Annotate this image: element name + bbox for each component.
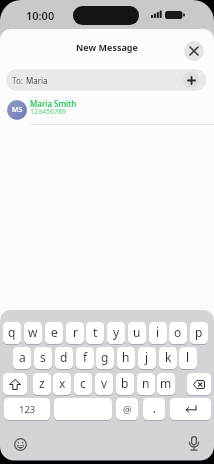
staticText: x (59, 375, 66, 391)
button[interactable]: n (137, 373, 155, 395)
button[interactable] (183, 72, 199, 88)
staticText: k (165, 349, 172, 365)
button[interactable]: v (95, 373, 113, 395)
button[interactable] (188, 436, 200, 452)
staticText: j (145, 349, 149, 365)
button[interactable] (187, 373, 211, 395)
staticText: . (153, 402, 156, 416)
staticText: q (8, 324, 16, 340)
staticText: v (101, 375, 108, 391)
button[interactable]: d (55, 347, 73, 369)
staticText: New Message (76, 41, 138, 53)
staticText: g (101, 349, 109, 365)
staticText: n (142, 375, 150, 391)
button[interactable]: i (149, 322, 167, 344)
staticText: i (156, 324, 160, 340)
button[interactable]: q (3, 322, 21, 344)
button[interactable]: m (157, 373, 175, 395)
staticText: s (40, 349, 46, 365)
staticText: w (28, 324, 38, 340)
button[interactable]: s (34, 347, 52, 369)
staticText: r (73, 324, 78, 340)
staticText: Maria (26, 75, 48, 86)
button[interactable]: a (13, 347, 31, 369)
button[interactable] (14, 438, 27, 451)
staticText: e (51, 324, 58, 340)
staticText: 10:00 (26, 8, 55, 22)
staticText: d (60, 349, 68, 365)
button[interactable] (184, 41, 204, 61)
button[interactable]: l (179, 347, 197, 369)
button[interactable]: MS (0, 96, 214, 124)
button[interactable]: y (107, 322, 125, 344)
button[interactable]: z (33, 373, 51, 395)
staticText: 123 (19, 403, 36, 416)
staticText: u (133, 324, 141, 340)
staticText: @ (123, 403, 132, 416)
staticText: p (195, 324, 203, 340)
button[interactable]: h (117, 347, 135, 369)
staticText: b (121, 375, 129, 391)
staticText: z (39, 375, 45, 391)
button[interactable]: @ (116, 398, 138, 420)
button[interactable]: f (76, 347, 94, 369)
button[interactable]: To: (6, 69, 206, 91)
staticText: c (80, 375, 86, 391)
staticText: y (113, 324, 120, 340)
button[interactable] (170, 398, 211, 420)
staticText: a (19, 349, 26, 365)
staticText: m (160, 375, 172, 391)
staticText: MS (12, 105, 23, 115)
button[interactable]: . (143, 398, 165, 420)
staticText: 123456789 (30, 107, 67, 117)
button[interactable]: g (96, 347, 114, 369)
staticText: t (93, 324, 98, 340)
staticText: l (186, 349, 190, 365)
button[interactable]: t (86, 322, 104, 344)
button[interactable]: w (24, 322, 42, 344)
button[interactable]: c (74, 373, 92, 395)
button[interactable]: e (45, 322, 63, 344)
staticText: h (122, 349, 130, 365)
button[interactable] (54, 398, 112, 420)
staticText: Maria Smith (30, 98, 77, 109)
button[interactable] (3, 373, 27, 395)
button[interactable]: x (53, 373, 71, 395)
staticText: o (174, 324, 182, 340)
staticText: f (83, 349, 88, 365)
staticText: To: (12, 75, 23, 86)
button[interactable]: p (190, 322, 208, 344)
button[interactable]: o (169, 322, 187, 344)
button[interactable]: u (128, 322, 146, 344)
button[interactable]: r (66, 322, 84, 344)
button[interactable]: j (138, 347, 156, 369)
button[interactable]: b (116, 373, 134, 395)
button[interactable]: 123 (4, 398, 50, 420)
button[interactable]: k (159, 347, 177, 369)
